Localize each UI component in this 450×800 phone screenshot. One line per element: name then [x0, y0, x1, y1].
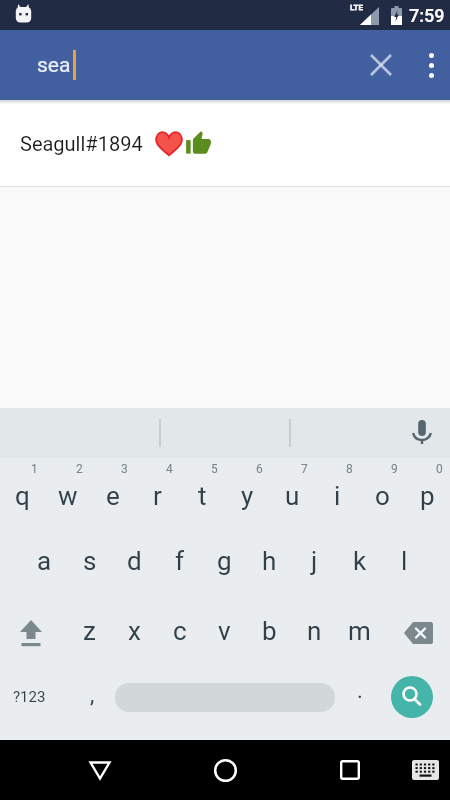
staticText: g — [217, 546, 232, 576]
staticText: 2 — [76, 462, 83, 476]
staticText: a — [37, 546, 52, 576]
button[interactable]: , — [67, 668, 112, 738]
button[interactable]: l — [382, 528, 427, 598]
button[interactable]: 1 — [0, 458, 45, 528]
staticText: o — [375, 481, 390, 511]
staticText: p — [420, 481, 435, 511]
button[interactable]: 9 — [360, 458, 405, 528]
staticText: y — [241, 481, 254, 511]
staticText: 7 — [301, 462, 308, 476]
button[interactable]: 4 — [135, 458, 180, 528]
staticText: r — [153, 481, 162, 511]
staticText: 6 — [256, 462, 263, 476]
staticText: j — [311, 546, 318, 576]
button[interactable] — [418, 43, 444, 87]
button[interactable]: v — [202, 598, 247, 668]
staticText: LTE — [350, 3, 363, 12]
staticText: z — [83, 616, 96, 646]
button[interactable]: n — [292, 598, 337, 668]
button[interactable] — [382, 668, 450, 738]
button[interactable]: m — [337, 598, 382, 668]
button[interactable]: f — [157, 528, 202, 598]
button[interactable] — [363, 47, 399, 83]
staticText: t — [198, 481, 207, 511]
button[interactable] — [403, 740, 447, 800]
staticText: 1 — [31, 462, 38, 476]
staticText: k — [353, 546, 367, 576]
button[interactable] — [0, 598, 67, 668]
button[interactable] — [402, 413, 442, 453]
staticText: l — [401, 546, 408, 576]
button[interactable] — [200, 740, 250, 800]
button[interactable] — [75, 740, 125, 800]
staticText: sea — [37, 53, 71, 78]
button[interactable]: ?123 — [0, 668, 67, 738]
staticText: . — [357, 678, 363, 704]
staticText: e — [106, 481, 120, 511]
button[interactable]: s — [67, 528, 112, 598]
button[interactable]: d — [112, 528, 157, 598]
button[interactable] — [112, 668, 337, 738]
button[interactable]: . — [337, 668, 382, 738]
staticText: n — [307, 616, 322, 646]
staticText: 4 — [166, 462, 173, 476]
button[interactable]: k — [337, 528, 382, 598]
button[interactable]: x — [112, 598, 157, 668]
button[interactable]: 3 — [90, 458, 135, 528]
staticText: i — [334, 481, 341, 511]
staticText: s — [83, 546, 97, 576]
button[interactable]: 0 — [405, 458, 450, 528]
button[interactable]: 2 — [45, 458, 90, 528]
button[interactable]: g — [202, 528, 247, 598]
staticText: 9 — [391, 462, 398, 476]
staticText: 0 — [436, 462, 443, 476]
staticText: , — [90, 682, 95, 708]
staticText: m — [348, 616, 371, 646]
staticText: 5 — [211, 462, 218, 476]
staticText: h — [262, 546, 277, 576]
staticText: c — [173, 616, 187, 646]
staticText: u — [285, 481, 300, 511]
staticText: 8 — [346, 462, 353, 476]
button[interactable]: a — [22, 528, 67, 598]
staticText: Seagull#1894 — [20, 132, 143, 155]
button[interactable] — [382, 598, 450, 668]
button[interactable]: c — [157, 598, 202, 668]
button[interactable]: b — [247, 598, 292, 668]
staticText: x — [128, 616, 141, 646]
staticText: ?123 — [13, 688, 46, 706]
button[interactable]: 5 — [180, 458, 225, 528]
button[interactable]: z — [67, 598, 112, 668]
button[interactable]: h — [247, 528, 292, 598]
button[interactable]: 7 — [270, 458, 315, 528]
button[interactable]: 6 — [225, 458, 270, 528]
staticText: b — [262, 616, 277, 646]
staticText: 3 — [121, 462, 128, 476]
staticText: v — [218, 616, 231, 646]
staticText: w — [58, 481, 78, 511]
button[interactable]: 8 — [315, 458, 360, 528]
staticText: f — [175, 546, 185, 576]
button[interactable] — [325, 740, 375, 800]
staticText: 7:59 — [409, 5, 445, 26]
button[interactable]: Seagull#1894 — [0, 100, 450, 186]
staticText: d — [127, 546, 142, 576]
staticText: q — [15, 481, 30, 511]
button[interactable]: j — [292, 528, 337, 598]
